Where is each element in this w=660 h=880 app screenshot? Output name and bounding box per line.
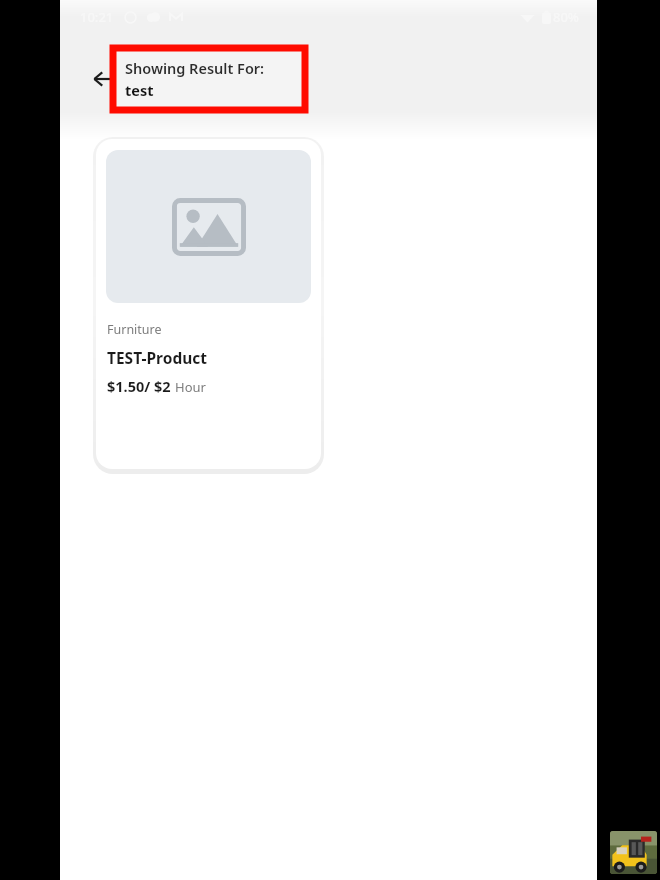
- staticText: test: [125, 80, 154, 100]
- button[interactable]: Showing Result For:: [113, 48, 305, 110]
- button[interactable]: Picture in picture video: [610, 831, 657, 874]
- staticText: Hour: [175, 378, 206, 396]
- staticText: Showing Result For:: [125, 58, 265, 78]
- staticText: TEST-Product: [107, 347, 207, 368]
- button[interactable]: Back: [82, 57, 126, 101]
- staticText: Furniture: [107, 321, 162, 338]
- button[interactable]: Furniture: [96, 139, 321, 469]
- staticText: $1.50/ $2: [107, 376, 171, 396]
